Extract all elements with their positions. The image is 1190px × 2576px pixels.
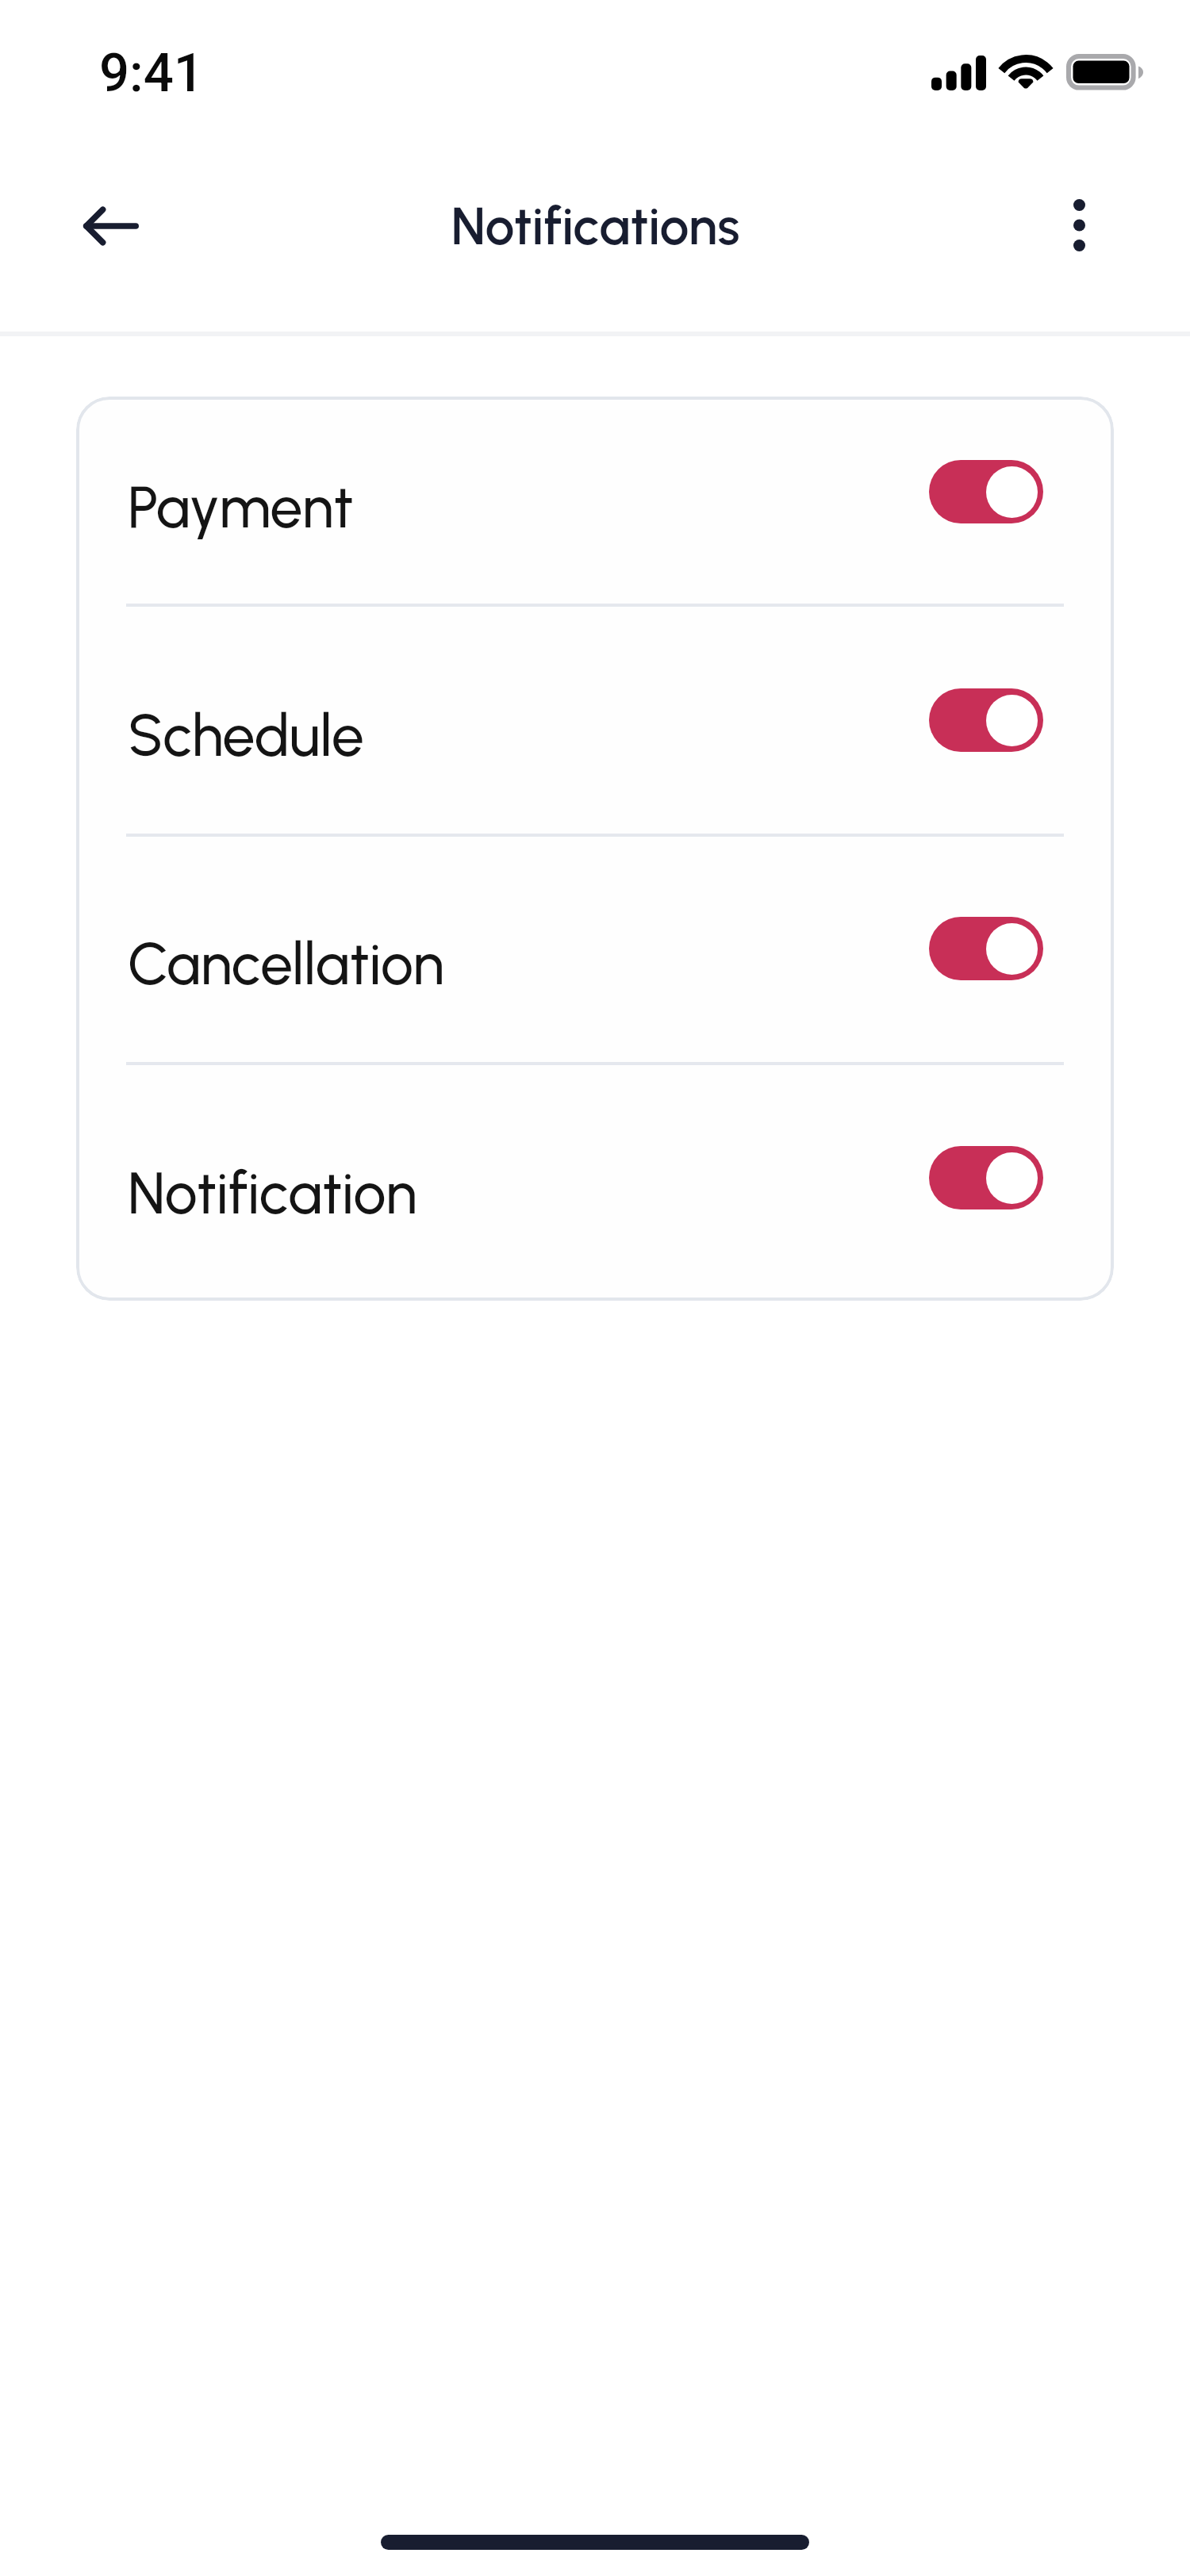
button[interactable]: Cancellation — [76, 915, 1114, 982]
staticText: Payment — [128, 473, 354, 539]
button[interactable]: Back — [59, 200, 163, 252]
button[interactable]: Schedule notifications on — [929, 688, 1043, 752]
button[interactable]: Notification notifications on — [929, 1146, 1043, 1209]
button[interactable]: Notification — [76, 1144, 1114, 1211]
button[interactable]: Schedule — [76, 687, 1114, 753]
staticText: Notifications — [451, 194, 740, 257]
button[interactable]: Cancellation notifications on — [929, 917, 1043, 980]
staticText: Schedule — [128, 701, 364, 768]
staticText: 9:41 — [99, 42, 204, 105]
button[interactable]: Payment — [76, 458, 1114, 525]
staticText: Cancellation — [128, 930, 444, 996]
button[interactable]: Payment notifications on — [929, 460, 1043, 523]
button[interactable]: More options — [1038, 184, 1120, 266]
staticText: Notification — [128, 1159, 417, 1225]
